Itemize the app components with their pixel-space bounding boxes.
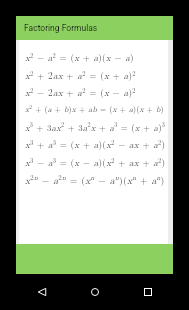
staticText: x2n − a2n = (xn − an)(xn + an) (25, 172, 165, 187)
button[interactable]: Factoring Formulas (16, 16, 173, 40)
staticText: x2 − a2 = (x + a)(x − a) (25, 50, 134, 64)
staticText: x3 − a3 = (x − a)(x2 + ax + a2) (25, 155, 166, 169)
staticText: x3 + 3ax2 + 3a2x + a3 = (x + a)3 (25, 120, 166, 134)
button[interactable]: Home (83, 280, 107, 304)
staticText: x2 − 2ax + a2 = (x − a)2 (25, 85, 136, 99)
staticText: x2 + (a + b)x + ab = (x + a)(x + b) (25, 102, 164, 114)
button[interactable]: Back (30, 280, 54, 304)
staticText: Factoring Formulas (24, 23, 98, 33)
staticText: x3 + a3 = (x + a)(x2 − ax + a2) (25, 137, 166, 151)
button[interactable]: Recent apps (136, 280, 160, 304)
staticText: x2 + 2ax + a2 = (x + a)2 (25, 68, 136, 82)
